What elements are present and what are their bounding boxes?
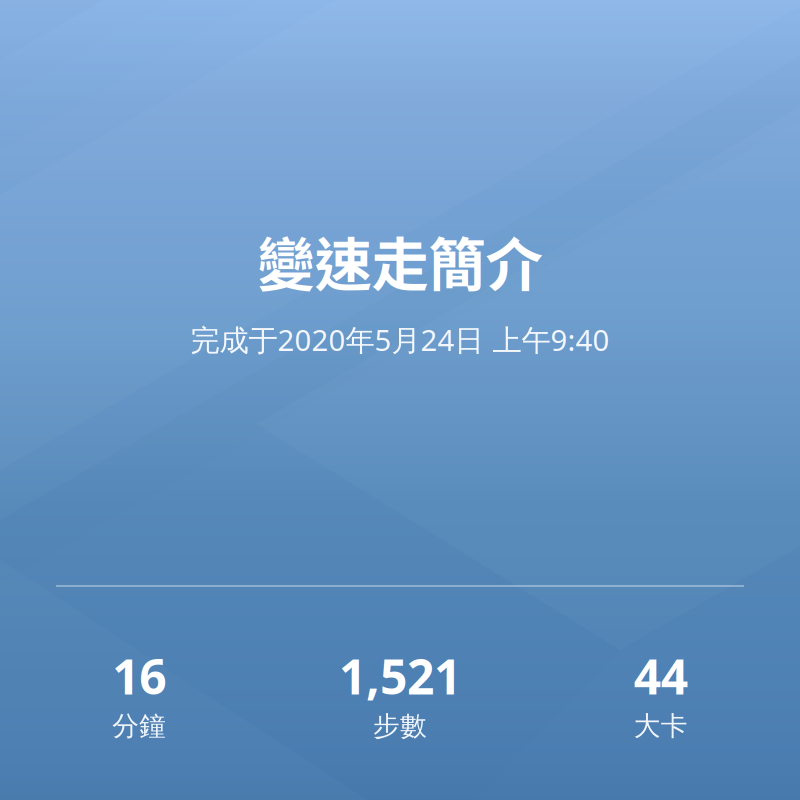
staticText: 大卡 (634, 710, 688, 742)
staticText: 步數 (373, 710, 427, 742)
staticText: 16 (112, 644, 166, 708)
staticText: 1,521 (339, 644, 461, 708)
staticText: 變速走簡介 (257, 219, 542, 302)
staticText: 44 (634, 644, 688, 708)
staticText: 分鐘 (112, 710, 166, 742)
staticText: 完成于2020年5月24日 上午9:40 (190, 320, 609, 359)
